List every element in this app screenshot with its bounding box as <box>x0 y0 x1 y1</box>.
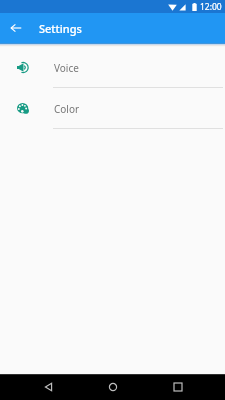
button[interactable]: Voice <box>0 47 225 88</box>
staticText: Settings <box>39 21 82 36</box>
button[interactable]: Color <box>0 88 225 129</box>
staticText: 12:00 <box>200 1 222 13</box>
button[interactable]: Navigate up <box>5 17 27 39</box>
staticText: Voice <box>54 61 79 75</box>
button[interactable]: Home <box>93 374 133 400</box>
staticText: Color <box>54 102 80 116</box>
button[interactable]: Back <box>28 374 68 400</box>
button[interactable]: Recent apps <box>158 374 198 400</box>
